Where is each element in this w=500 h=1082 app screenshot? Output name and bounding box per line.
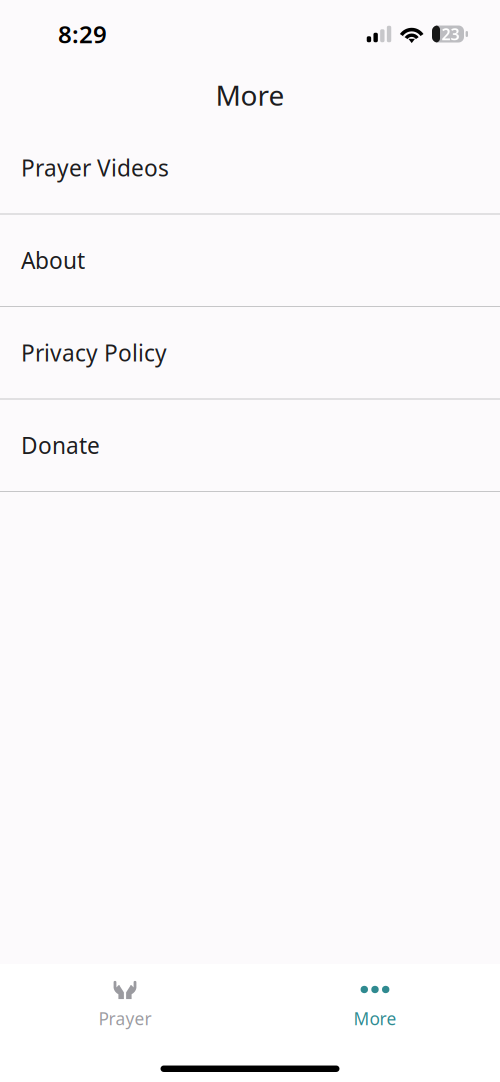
staticText: More (215, 76, 284, 114)
button[interactable]: Privacy Policy (0, 307, 500, 399)
button[interactable]: Prayer (0, 964, 250, 1038)
button[interactable]: About (0, 214, 500, 307)
staticText: About (21, 245, 85, 275)
staticText: More (353, 1007, 396, 1030)
staticText: Donate (21, 430, 100, 460)
button[interactable]: Donate (0, 399, 500, 492)
button[interactable]: More (250, 964, 500, 1038)
button[interactable]: Prayer Videos (0, 122, 500, 214)
staticText: 8:29 (58, 18, 107, 50)
staticText: Privacy Policy (21, 338, 167, 368)
staticText: Prayer (98, 1007, 151, 1030)
staticText: 23 (441, 23, 459, 45)
staticText: Prayer Videos (21, 153, 169, 183)
